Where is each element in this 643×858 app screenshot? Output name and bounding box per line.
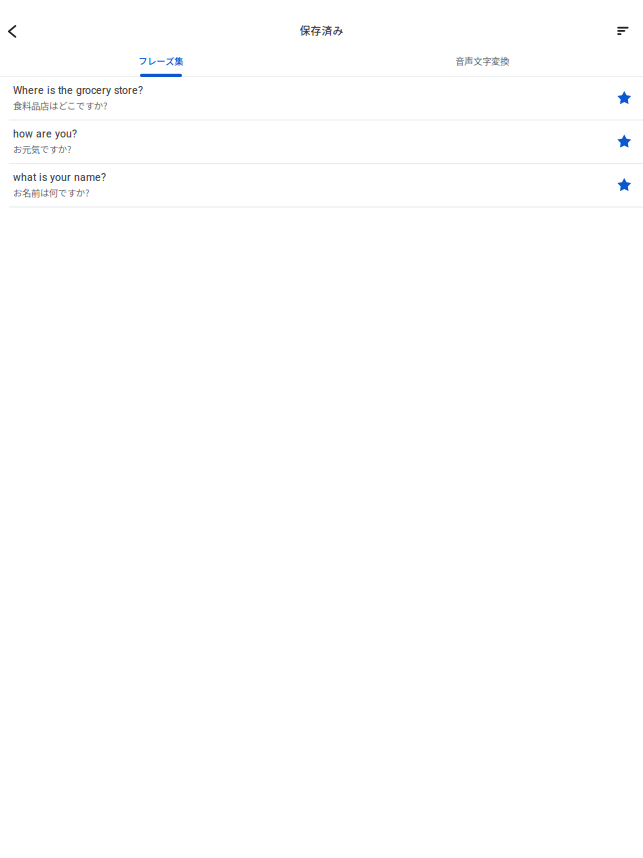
button[interactable]: how are you? (0, 120, 617, 163)
button[interactable]: Where is the grocery store? (0, 77, 617, 119)
button[interactable]: Remove from saved (617, 120, 643, 163)
button[interactable]: what is your name? (0, 164, 617, 206)
staticText: Where is the grocery store? (13, 84, 143, 96)
staticText: お名前は何ですか? (13, 186, 89, 199)
button[interactable]: Remove from saved (617, 164, 643, 206)
staticText: what is your name? (13, 171, 106, 183)
button[interactable]: Back (0, 13, 25, 46)
staticText: お元気ですか? (13, 142, 71, 156)
staticText: how are you? (13, 128, 77, 140)
staticText: 音声文字変換 (455, 54, 509, 67)
button[interactable]: 音声文字変換 (321, 48, 643, 77)
button[interactable]: Remove from saved (617, 77, 643, 119)
staticText: フレーズ集 (138, 54, 183, 67)
button[interactable]: フレーズ集 (0, 48, 321, 77)
staticText: 保存済み (299, 22, 343, 38)
button[interactable]: Sort (606, 13, 639, 46)
staticText: 食料品店はどこですか? (13, 99, 107, 112)
